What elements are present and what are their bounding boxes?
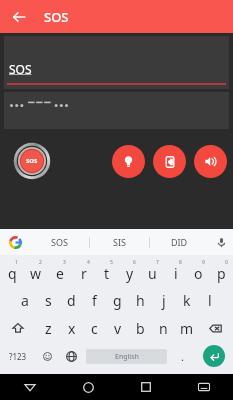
staticText: g (113, 291, 122, 310)
button[interactable]: 5 (95, 258, 118, 286)
staticText: w (30, 264, 42, 283)
staticText: SOS (9, 61, 32, 77)
staticText: n (159, 319, 168, 338)
button[interactable]: Home (76, 375, 100, 399)
button[interactable]: 6 (118, 258, 141, 286)
button[interactable]: Recents (134, 375, 158, 399)
staticText: . (181, 349, 184, 364)
button[interactable]: English (86, 349, 167, 364)
button[interactable]: 0 (210, 258, 233, 286)
button[interactable]: z (36, 314, 60, 342)
staticText: e (56, 264, 64, 283)
staticText: 5 (110, 259, 113, 266)
staticText: u (148, 264, 157, 283)
button[interactable]: Sound (194, 145, 227, 178)
button[interactable]: Switch keyboard (192, 375, 216, 399)
staticText: o (194, 264, 203, 283)
button[interactable]: 7 (141, 258, 164, 286)
staticText: t (104, 264, 110, 283)
button[interactable]: l (198, 286, 221, 314)
staticText: p (217, 264, 226, 283)
button[interactable]: ?123 (0, 342, 35, 370)
button[interactable]: Backspace (198, 314, 233, 342)
staticText: 4 (87, 259, 90, 266)
button[interactable]: Back (18, 375, 42, 399)
button[interactable]: n (152, 314, 175, 342)
staticText: m (180, 319, 194, 338)
button[interactable]: Voice input (209, 229, 233, 255)
button[interactable]: DID (150, 229, 209, 255)
button[interactable]: Flashlight (112, 145, 145, 178)
button[interactable]: SOS (30, 229, 89, 255)
button[interactable]: 1 (0, 258, 24, 286)
staticText: 9 (202, 259, 205, 266)
button[interactable]: m (175, 314, 198, 342)
button[interactable]: Emoji (35, 342, 59, 370)
button[interactable]: Back (6, 4, 32, 30)
button[interactable]: Start SOS (13, 142, 51, 180)
button[interactable]: a (13, 286, 37, 314)
staticText: f (92, 291, 97, 310)
staticText: l (208, 291, 212, 310)
button[interactable]: 3 (48, 258, 72, 286)
staticText: SOS (44, 8, 69, 26)
staticText: DID (171, 236, 188, 248)
staticText: 2 (39, 259, 42, 266)
button[interactable]: c (83, 314, 106, 342)
staticText: d (67, 291, 76, 310)
staticText: y (126, 264, 134, 283)
button[interactable]: s (37, 286, 60, 314)
staticText: SOS (26, 157, 38, 165)
staticText: r (81, 264, 87, 283)
staticText: 3 (63, 259, 66, 266)
button[interactable]: d (60, 286, 83, 314)
button[interactable]: b (129, 314, 152, 342)
button[interactable]: 8 (164, 258, 187, 286)
staticText: v (114, 319, 122, 338)
staticText: h (136, 291, 145, 310)
staticText: q (8, 264, 17, 283)
staticText: SOS (51, 236, 68, 248)
button[interactable]: Google (0, 229, 30, 255)
staticText: 7 (156, 259, 159, 266)
button[interactable]: 9 (187, 258, 210, 286)
staticText: b (136, 319, 145, 338)
staticText: a (21, 291, 29, 310)
staticText: i (174, 264, 178, 283)
button[interactable]: 2 (24, 258, 48, 286)
staticText: s (45, 291, 52, 310)
button[interactable]: x (60, 314, 83, 342)
button[interactable]: 4 (72, 258, 95, 286)
staticText: k (183, 291, 191, 310)
staticText: x (68, 319, 76, 338)
staticText: SIS (113, 236, 126, 248)
button[interactable]: j (152, 286, 175, 314)
button[interactable]: . (170, 342, 194, 370)
button[interactable]: h (129, 286, 152, 314)
staticText: 8 (179, 259, 182, 266)
staticText: 6 (133, 259, 136, 266)
button[interactable]: g (106, 286, 129, 314)
button[interactable]: k (175, 286, 198, 314)
staticText: c (91, 319, 98, 338)
button[interactable]: SIS (90, 229, 149, 255)
staticText: z (45, 319, 52, 338)
button[interactable]: f (83, 286, 106, 314)
button[interactable]: Enter (194, 342, 233, 370)
staticText: 0 (225, 259, 228, 266)
button[interactable]: Screen light (153, 145, 186, 178)
staticText: English (115, 352, 139, 362)
staticText: 1 (15, 259, 18, 266)
staticText: j (162, 291, 166, 310)
staticText: ?123 (9, 351, 27, 362)
button[interactable]: Shift (0, 314, 36, 342)
button[interactable]: Change language (59, 342, 83, 370)
button[interactable]: v (106, 314, 129, 342)
